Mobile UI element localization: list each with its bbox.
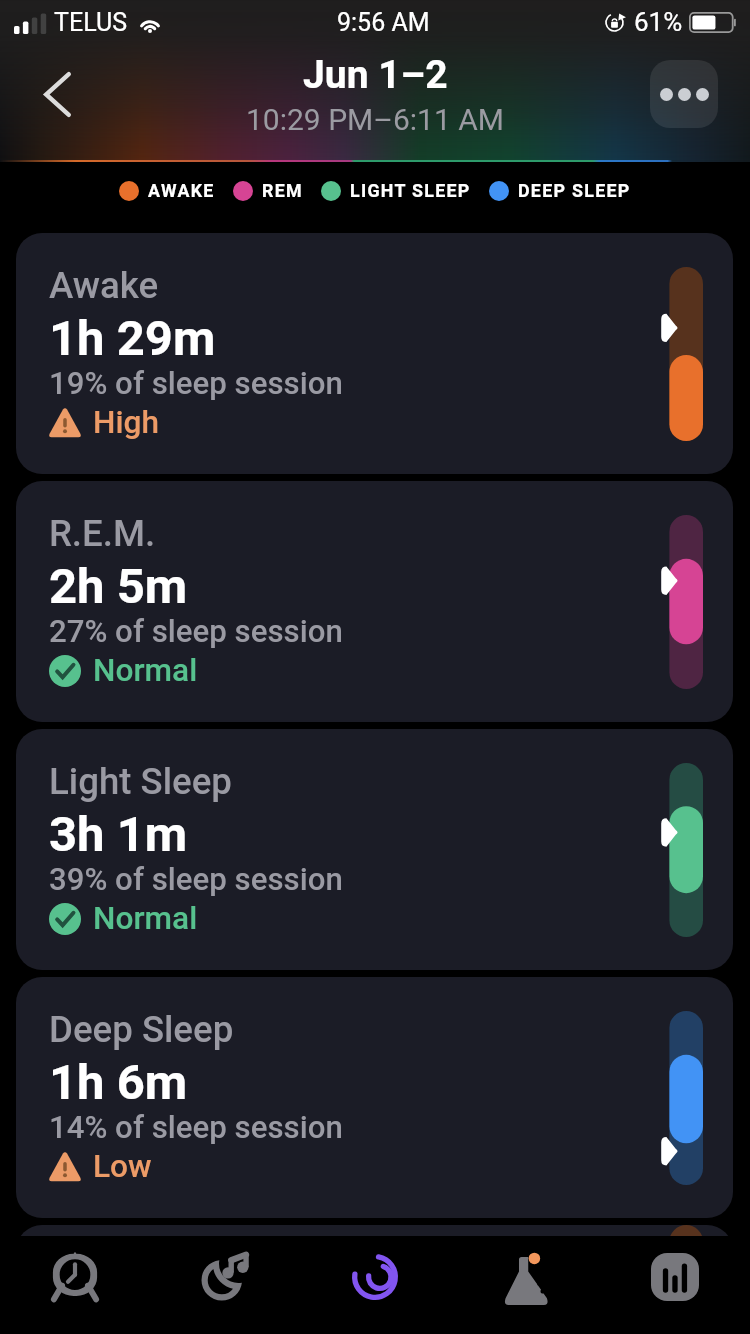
staticText: High bbox=[93, 404, 159, 441]
staticText: Jun 1–2 bbox=[303, 52, 448, 98]
staticText: R.E.M. bbox=[49, 512, 156, 555]
button[interactable]: REM bbox=[233, 180, 303, 201]
staticText: Deep Sleep bbox=[49, 1008, 234, 1051]
button[interactable]: Alarm bbox=[0, 1236, 150, 1334]
staticText: DEEP SLEEP bbox=[518, 180, 631, 201]
staticText: 2h 5m bbox=[49, 558, 188, 615]
button[interactable]: Awake bbox=[16, 1225, 733, 1334]
staticText: 1h 6m bbox=[49, 1054, 188, 1111]
staticText: Awake bbox=[49, 1256, 159, 1299]
button[interactable]: Lab bbox=[450, 1236, 600, 1334]
staticText: TELUS bbox=[54, 8, 127, 37]
staticText: 9:56 AM bbox=[337, 8, 430, 37]
staticText: 19% of sleep session bbox=[49, 365, 343, 402]
button[interactable]: Deep Sleep bbox=[16, 977, 733, 1218]
button[interactable]: More options bbox=[650, 60, 718, 128]
staticText: 39% of sleep session bbox=[49, 861, 343, 898]
staticText: Normal bbox=[93, 900, 198, 937]
staticText: 3h 1m bbox=[49, 806, 188, 863]
staticText: Low bbox=[93, 1148, 152, 1185]
staticText: AWAKE bbox=[148, 180, 215, 201]
button[interactable]: Awake bbox=[16, 233, 733, 474]
staticText: 61% bbox=[634, 7, 683, 37]
staticText: Awake bbox=[49, 264, 159, 307]
staticText: 10:29 PM–6:11 AM bbox=[246, 102, 505, 137]
staticText: REM bbox=[262, 180, 303, 201]
staticText: 14% of sleep session bbox=[49, 1109, 343, 1146]
button[interactable]: DEEP SLEEP bbox=[489, 180, 631, 201]
staticText: 1h 29m bbox=[49, 310, 216, 367]
button[interactable]: Sleep bbox=[300, 1236, 450, 1334]
button[interactable]: R.E.M. bbox=[16, 481, 733, 722]
staticText: 27% of sleep session bbox=[49, 613, 343, 650]
staticText: Normal bbox=[93, 652, 198, 689]
staticText: Light Sleep bbox=[49, 760, 232, 803]
button[interactable]: Stats bbox=[600, 1236, 750, 1334]
button[interactable]: Sounds bbox=[150, 1236, 300, 1334]
button[interactable]: Light Sleep bbox=[16, 729, 733, 970]
button[interactable]: Back bbox=[0, 35, 114, 153]
button[interactable]: AWAKE bbox=[119, 180, 215, 201]
button[interactable]: LIGHT SLEEP bbox=[321, 180, 471, 201]
staticText: LIGHT SLEEP bbox=[350, 180, 471, 201]
